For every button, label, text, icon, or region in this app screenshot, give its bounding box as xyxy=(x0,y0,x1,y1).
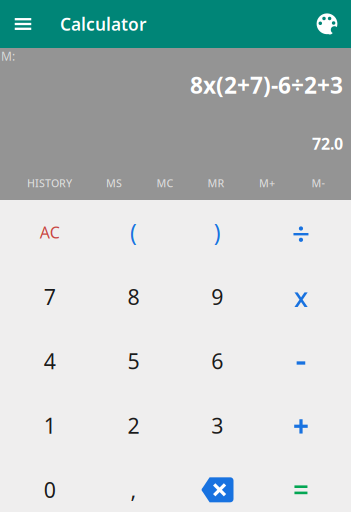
staticText: 8 xyxy=(128,282,140,311)
staticText: M+ xyxy=(259,176,275,190)
staticText: 5 xyxy=(128,347,140,375)
staticText: , xyxy=(131,476,137,504)
button[interactable]: Backspace xyxy=(175,458,259,512)
staticText: 1 xyxy=(44,411,56,439)
button[interactable]: 0 xyxy=(8,458,92,512)
button[interactable]: M- xyxy=(292,171,343,195)
button[interactable]: Menu xyxy=(0,0,46,48)
staticText: MR xyxy=(207,176,224,190)
staticText: 72.0 xyxy=(312,133,343,154)
staticText: M: xyxy=(1,48,15,64)
staticText: 4 xyxy=(44,347,56,375)
button[interactable]: 9 xyxy=(175,264,259,329)
button[interactable]: MR xyxy=(190,171,241,195)
button[interactable]: Close parenthesis xyxy=(175,200,259,264)
staticText: HISTORY xyxy=(27,176,72,190)
button[interactable]: MS xyxy=(88,171,139,195)
button[interactable]: 1 xyxy=(8,393,92,458)
button[interactable]: M+ xyxy=(241,171,292,195)
button[interactable]: 6 xyxy=(175,329,259,393)
button[interactable]: 2 xyxy=(92,393,175,458)
button[interactable]: Plus xyxy=(259,393,343,458)
staticText: ( xyxy=(130,217,137,247)
button[interactable]: Multiply xyxy=(259,264,343,329)
staticText: 7 xyxy=(44,282,56,311)
staticText: 2 xyxy=(128,411,140,439)
button[interactable]: 8 xyxy=(92,264,175,329)
button[interactable]: 7 xyxy=(8,264,92,329)
button[interactable]: 5 xyxy=(92,329,175,393)
staticText: 6 xyxy=(211,347,223,375)
button[interactable]: 3 xyxy=(175,393,259,458)
button[interactable]: Open parenthesis xyxy=(92,200,175,264)
staticText: ) xyxy=(214,217,221,247)
staticText: 3 xyxy=(211,411,223,439)
staticText: 8x(2+7)-6÷2+3 xyxy=(190,70,343,100)
staticText: 0 xyxy=(44,476,56,504)
button[interactable]: 4 xyxy=(8,329,92,393)
staticText: MC xyxy=(156,176,173,190)
staticText: 9 xyxy=(211,282,223,311)
button[interactable]: MC xyxy=(139,171,190,195)
staticText: MS xyxy=(106,176,122,190)
button[interactable]: Decimal comma xyxy=(92,458,175,512)
button[interactable]: Theme xyxy=(303,0,351,48)
button[interactable]: Equals xyxy=(259,458,343,512)
staticText: M- xyxy=(311,176,324,190)
button[interactable]: Divide xyxy=(259,200,343,264)
staticText: AC xyxy=(40,222,60,243)
button[interactable]: All clear xyxy=(8,200,92,264)
staticText: Calculator xyxy=(60,12,147,35)
button[interactable]: Minus xyxy=(259,329,343,393)
button[interactable]: HISTORY xyxy=(10,171,88,195)
